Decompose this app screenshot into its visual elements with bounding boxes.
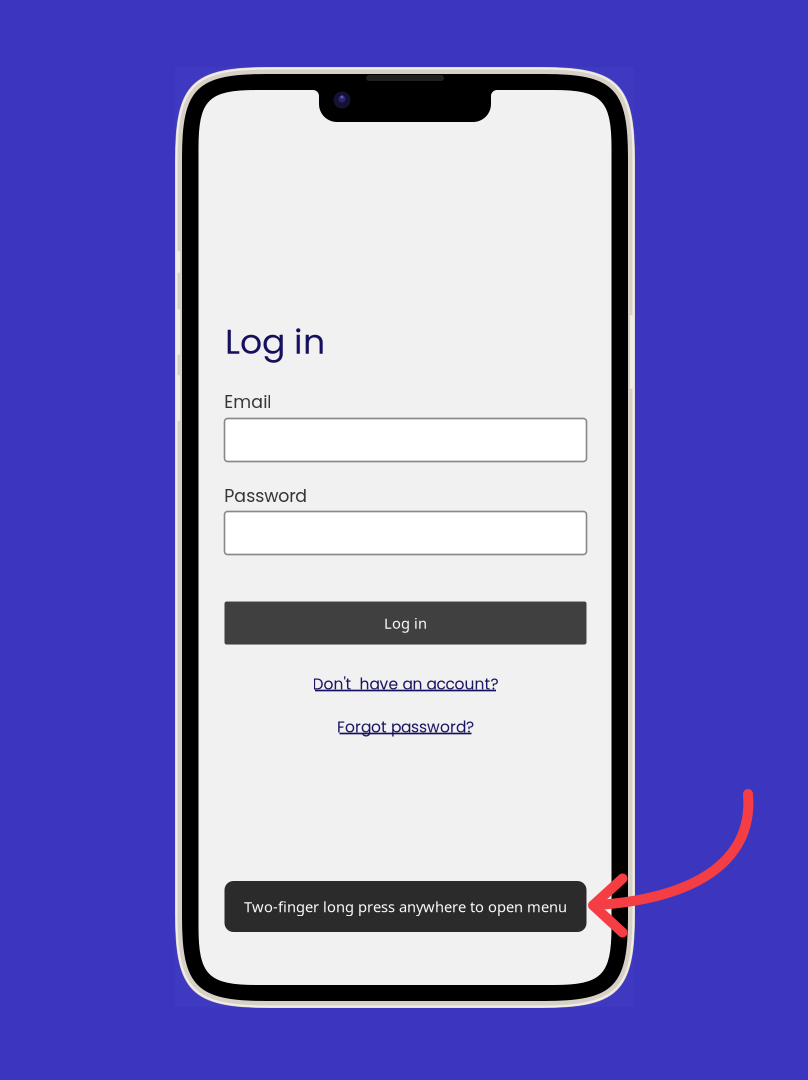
button[interactable]: Log in <box>224 601 586 644</box>
staticText: Log in <box>225 317 325 366</box>
button[interactable]: Forgot password? <box>275 712 535 742</box>
staticText: Forgot password? <box>337 716 474 738</box>
staticText: Log in <box>384 613 427 633</box>
staticText: Don't have an account? <box>312 673 498 695</box>
button[interactable]: Don't have an account? <box>275 669 535 699</box>
staticText: Two-finger long press anywhere to open m… <box>244 897 567 916</box>
staticText: Password <box>224 484 307 508</box>
staticText: Email <box>224 390 271 414</box>
